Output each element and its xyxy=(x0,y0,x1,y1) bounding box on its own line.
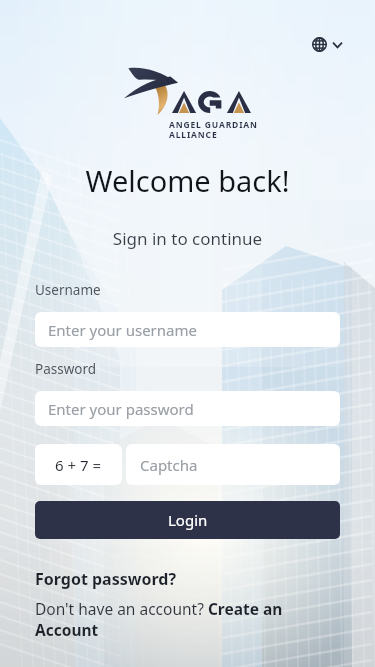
button[interactable]: Don't have an account? Create an Account xyxy=(35,598,340,641)
staticText: ANGEL GUARDIAN xyxy=(169,119,258,131)
staticText: Password xyxy=(35,360,97,378)
staticText: ALLIANCE xyxy=(169,129,218,141)
button[interactable]: Login xyxy=(35,501,340,539)
button[interactable]: Change language xyxy=(308,32,346,57)
staticText: Username xyxy=(35,281,101,299)
button[interactable]: Enter your password xyxy=(35,391,340,426)
staticText: Forgot password? xyxy=(35,568,177,590)
staticText: 6 + 7 = xyxy=(55,455,102,475)
button[interactable]: Enter your username xyxy=(35,312,340,347)
staticText: Don't have an account? Create an Account xyxy=(35,598,340,641)
button[interactable]: Captcha xyxy=(126,444,340,485)
staticText: Welcome back! xyxy=(0,161,375,200)
staticText: Login xyxy=(168,510,208,530)
button[interactable]: Forgot password? xyxy=(35,568,177,590)
staticText: Sign in to continue xyxy=(0,227,375,250)
staticText: Enter your username xyxy=(48,320,197,340)
staticText: Captcha xyxy=(140,455,198,475)
staticText: Enter your password xyxy=(48,399,194,419)
